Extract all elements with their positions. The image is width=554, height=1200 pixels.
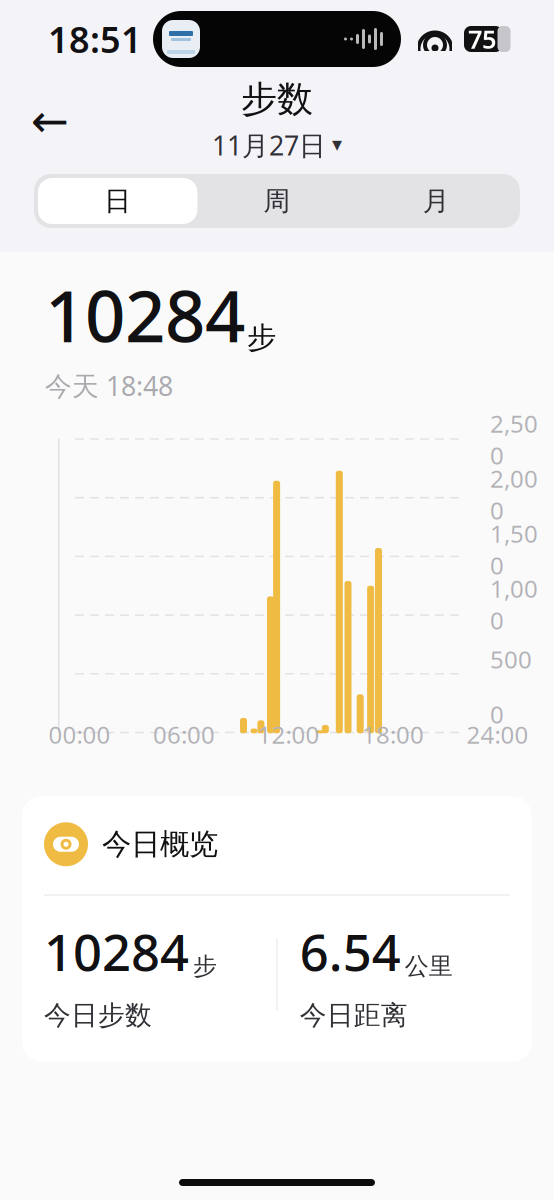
staticText: 2,000 <box>490 462 538 526</box>
staticText: 公里 <box>405 952 453 981</box>
staticText: 2,500 <box>490 407 538 471</box>
staticText: 月 <box>423 185 450 217</box>
staticText: 6.54 <box>300 918 401 985</box>
staticText: 11月27日 <box>212 127 326 163</box>
staticText: 06:00 <box>153 718 215 750</box>
staticText: ← <box>31 95 69 147</box>
staticText: 0 <box>490 698 504 730</box>
staticText: 今天 18:48 <box>45 368 173 403</box>
staticText: 500 <box>490 643 532 675</box>
staticText: 18:00 <box>362 718 424 750</box>
staticText: 1,500 <box>490 517 538 581</box>
staticText: 75 <box>468 22 496 56</box>
staticText: 10284 <box>44 918 189 985</box>
staticText: 今日步数 <box>44 999 152 1032</box>
staticText: 步 <box>247 320 276 356</box>
staticText: 步数 <box>241 77 313 121</box>
staticText: 步 <box>193 952 217 981</box>
staticText: 日 <box>104 185 131 217</box>
staticText: 今日概览 <box>102 826 218 862</box>
staticText: 周 <box>263 185 290 217</box>
staticText: 12:00 <box>257 718 319 750</box>
button[interactable]: 周 <box>197 178 357 224</box>
staticText: ▾ <box>332 133 342 155</box>
staticText: 1,000 <box>490 572 538 636</box>
staticText: 18:51 <box>48 15 142 63</box>
staticText: 今日距离 <box>300 999 408 1032</box>
staticText: 10284 <box>45 268 245 362</box>
button[interactable]: 月 <box>357 178 516 224</box>
staticText: 24:00 <box>466 718 528 750</box>
button[interactable]: Back <box>24 95 76 147</box>
button[interactable]: 11月27日 <box>206 125 348 165</box>
staticText: 00:00 <box>48 718 110 750</box>
button[interactable]: 日 <box>38 178 197 224</box>
